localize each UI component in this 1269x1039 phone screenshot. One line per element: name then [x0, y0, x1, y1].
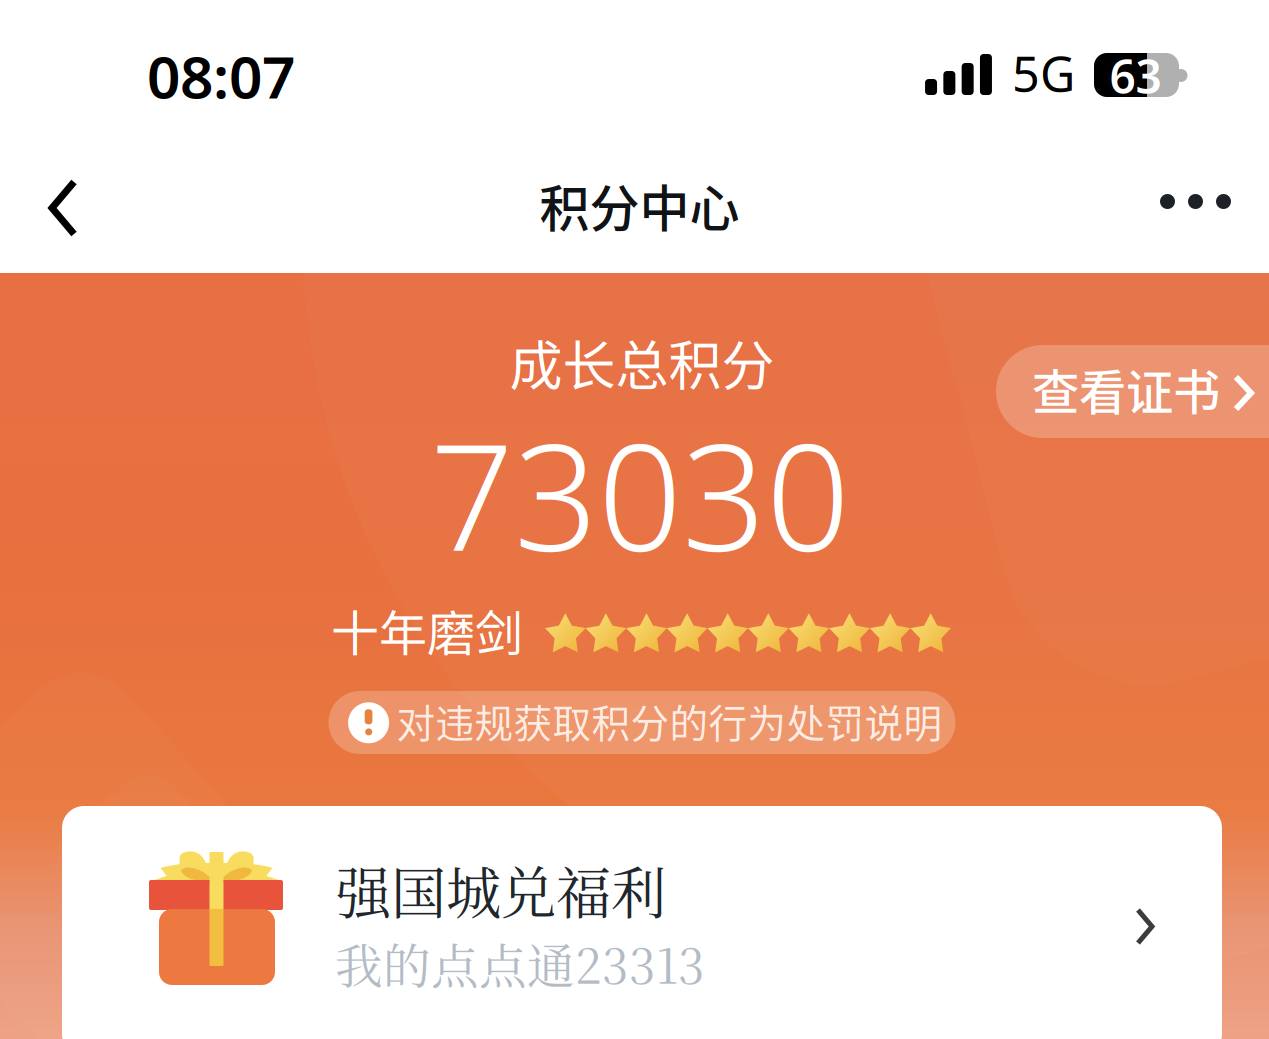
staticText: 积分中心 [539, 169, 739, 241]
button[interactable]: More [1126, 152, 1265, 251]
button[interactable]: 对违规获取积分的行为处罚说明 [328, 691, 955, 754]
button[interactable]: 强国城兑福利 [62, 806, 1222, 1039]
staticText: 强国城兑福利 [336, 850, 666, 929]
staticText: 5G [1012, 40, 1075, 106]
staticText: 对违规获取积分的行为处罚说明 [396, 693, 942, 749]
button[interactable]: 查看证书 [996, 345, 1269, 438]
staticText: 73030 [430, 394, 850, 594]
staticText: 成长总积分 [509, 324, 774, 401]
staticText: 63 [1109, 45, 1161, 107]
staticText: 查看证书 [1032, 355, 1220, 423]
button[interactable]: Back [22, 138, 132, 278]
staticText: 十年磨剑 [331, 595, 523, 664]
staticText: 我的点点通23313 [335, 929, 705, 997]
staticText: 08:07 [147, 36, 295, 116]
